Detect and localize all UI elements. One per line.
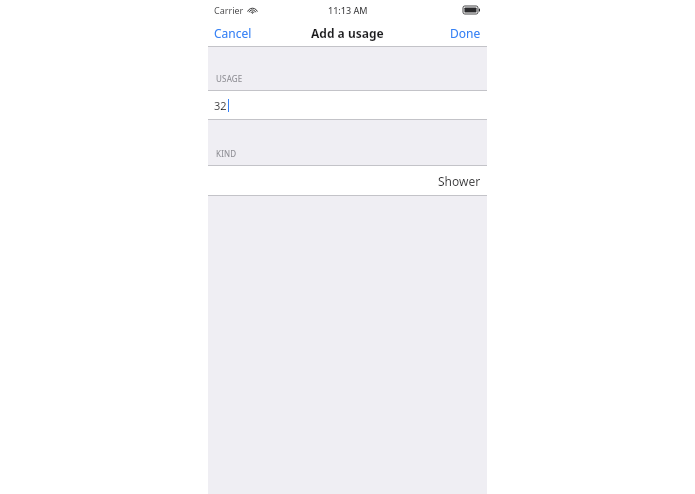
staticText: Shower <box>438 173 481 189</box>
staticText: Done <box>450 25 481 41</box>
staticText: Carrier <box>214 4 244 16</box>
button[interactable]: Done <box>442 20 487 46</box>
button[interactable]: Shower <box>208 166 487 195</box>
button[interactable]: Cancel <box>208 20 260 46</box>
staticText: 11:13 AM <box>328 4 368 16</box>
button[interactable]: 32 <box>208 91 487 119</box>
staticText: KIND <box>216 148 237 159</box>
staticText: USAGE <box>216 73 243 84</box>
staticText: Add a usage <box>311 25 384 41</box>
staticText: Cancel <box>214 25 252 41</box>
staticText: 32 <box>214 98 227 113</box>
